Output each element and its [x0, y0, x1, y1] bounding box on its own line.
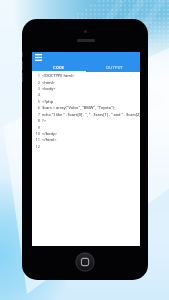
button[interactable]: Open navigation menu: [34, 53, 43, 62]
staticText: 1: [32, 73, 40, 78]
button[interactable]: Home: [75, 252, 95, 272]
staticText: 2: [32, 80, 40, 85]
staticText: 12: [32, 144, 40, 149]
staticText: 10: [32, 131, 40, 136]
staticText: 6: [32, 105, 40, 110]
staticText: 8: [32, 118, 40, 123]
staticText: </html>: [42, 137, 57, 142]
staticText: <?php: [42, 99, 54, 104]
staticText: </body>: [42, 131, 58, 136]
staticText: OUTPUT: [106, 65, 124, 70]
staticText: 5: [32, 99, 40, 104]
staticText: 7: [32, 112, 40, 117]
staticText: ?>: [42, 118, 46, 123]
button[interactable]: CODE: [32, 63, 86, 71]
staticText: 4: [32, 92, 40, 97]
staticText: 9: [32, 125, 40, 130]
staticText: <html>: [42, 80, 55, 85]
button[interactable]: OUTPUT: [86, 63, 140, 71]
staticText: $cars = array("Volvo", "BMW", "Toyota");: [42, 105, 115, 110]
staticText: 3: [32, 86, 40, 91]
staticText: 11: [32, 137, 40, 142]
staticText: CODE: [53, 65, 65, 70]
staticText: echo "I like " . $cars[0] . ", " . $cars…: [42, 112, 140, 117]
staticText: <!DOCTYPE html>: [42, 73, 75, 78]
staticText: <body>: [42, 86, 56, 91]
